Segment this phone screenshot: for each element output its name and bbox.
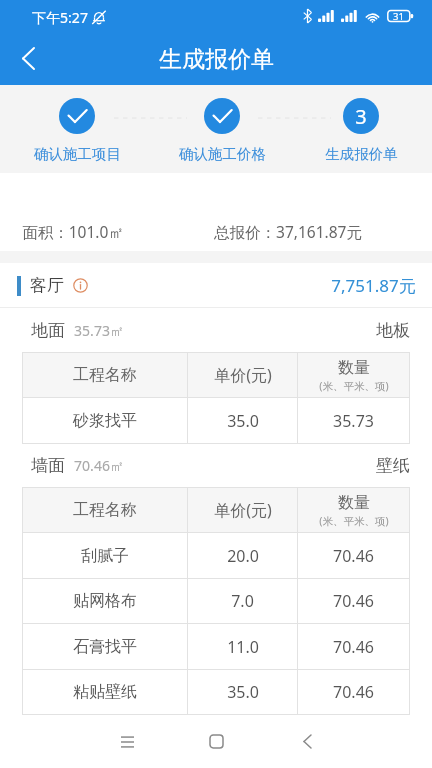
button[interactable]: 确认施工价格 bbox=[158, 85, 286, 163]
button[interactable]: Back bbox=[0, 32, 56, 85]
staticText: (米、平米、项) bbox=[319, 514, 389, 528]
staticText: 70.46 bbox=[333, 590, 374, 612]
staticText: 11.0 bbox=[227, 636, 259, 658]
staticText: 确认施工价格 bbox=[179, 145, 266, 163]
staticText: 70.46㎡ bbox=[74, 456, 124, 475]
button[interactable]: 石膏找平 bbox=[22, 624, 410, 669]
staticText: 砂浆找平 bbox=[73, 411, 137, 431]
staticText: 生成报价单 bbox=[159, 45, 274, 74]
staticText: 工程名称 bbox=[73, 365, 137, 385]
staticText: 粘贴壁纸 bbox=[73, 682, 137, 702]
staticText: 70.46 bbox=[333, 545, 374, 567]
staticText: 墙面 bbox=[31, 455, 65, 476]
staticText: 壁纸 bbox=[376, 455, 410, 476]
button[interactable]: 3 bbox=[297, 85, 425, 163]
staticText: 刮腻子 bbox=[81, 546, 129, 566]
staticText: 确认施工项目 bbox=[34, 145, 121, 163]
staticText: 35.73 bbox=[333, 410, 374, 432]
button[interactable]: 确认施工项目 bbox=[13, 85, 141, 163]
button[interactable]: 粘贴壁纸 bbox=[22, 670, 410, 714]
button[interactable]: Home bbox=[180, 715, 252, 768]
staticText: 单价(元) bbox=[214, 499, 272, 521]
button[interactable]: 刮腻子 bbox=[22, 533, 410, 578]
staticText: 35.0 bbox=[227, 681, 259, 703]
staticText: 总报价：37,161.87元 bbox=[214, 221, 362, 242]
staticText: 地面 bbox=[31, 320, 65, 341]
button[interactable]: 砂浆找平 bbox=[22, 398, 410, 443]
staticText: 7,751.87元 bbox=[331, 274, 416, 297]
staticText: (米、平米、项) bbox=[319, 379, 389, 393]
staticText: 数量 bbox=[338, 358, 370, 378]
staticText: 地板 bbox=[376, 320, 410, 341]
staticText: 石膏找平 bbox=[73, 637, 137, 657]
staticText: 3 bbox=[355, 103, 367, 130]
button[interactable]: 客厅 bbox=[0, 263, 432, 308]
staticText: 下午5:27 bbox=[32, 8, 88, 27]
staticText: 工程名称 bbox=[73, 500, 137, 520]
button[interactable]: Menu bbox=[91, 715, 163, 768]
staticText: 70.46 bbox=[333, 681, 374, 703]
staticText: 35.73㎡ bbox=[74, 321, 124, 340]
staticText: 生成报价单 bbox=[325, 145, 398, 163]
staticText: 20.0 bbox=[227, 545, 259, 567]
button[interactable]: Info bbox=[69, 274, 92, 297]
staticText: 7.0 bbox=[231, 590, 254, 612]
button[interactable]: 贴网格布 bbox=[22, 579, 410, 623]
button[interactable]: Back bbox=[271, 715, 343, 768]
staticText: 数量 bbox=[338, 493, 370, 513]
staticText: 70.46 bbox=[333, 636, 374, 658]
staticText: 面积：101.0㎡ bbox=[22, 221, 124, 242]
staticText: 35.0 bbox=[227, 410, 259, 432]
staticText: 31 bbox=[393, 10, 404, 23]
staticText: 客厅 bbox=[30, 275, 64, 296]
staticText: 贴网格布 bbox=[73, 591, 137, 611]
staticText: 单价(元) bbox=[214, 364, 272, 386]
